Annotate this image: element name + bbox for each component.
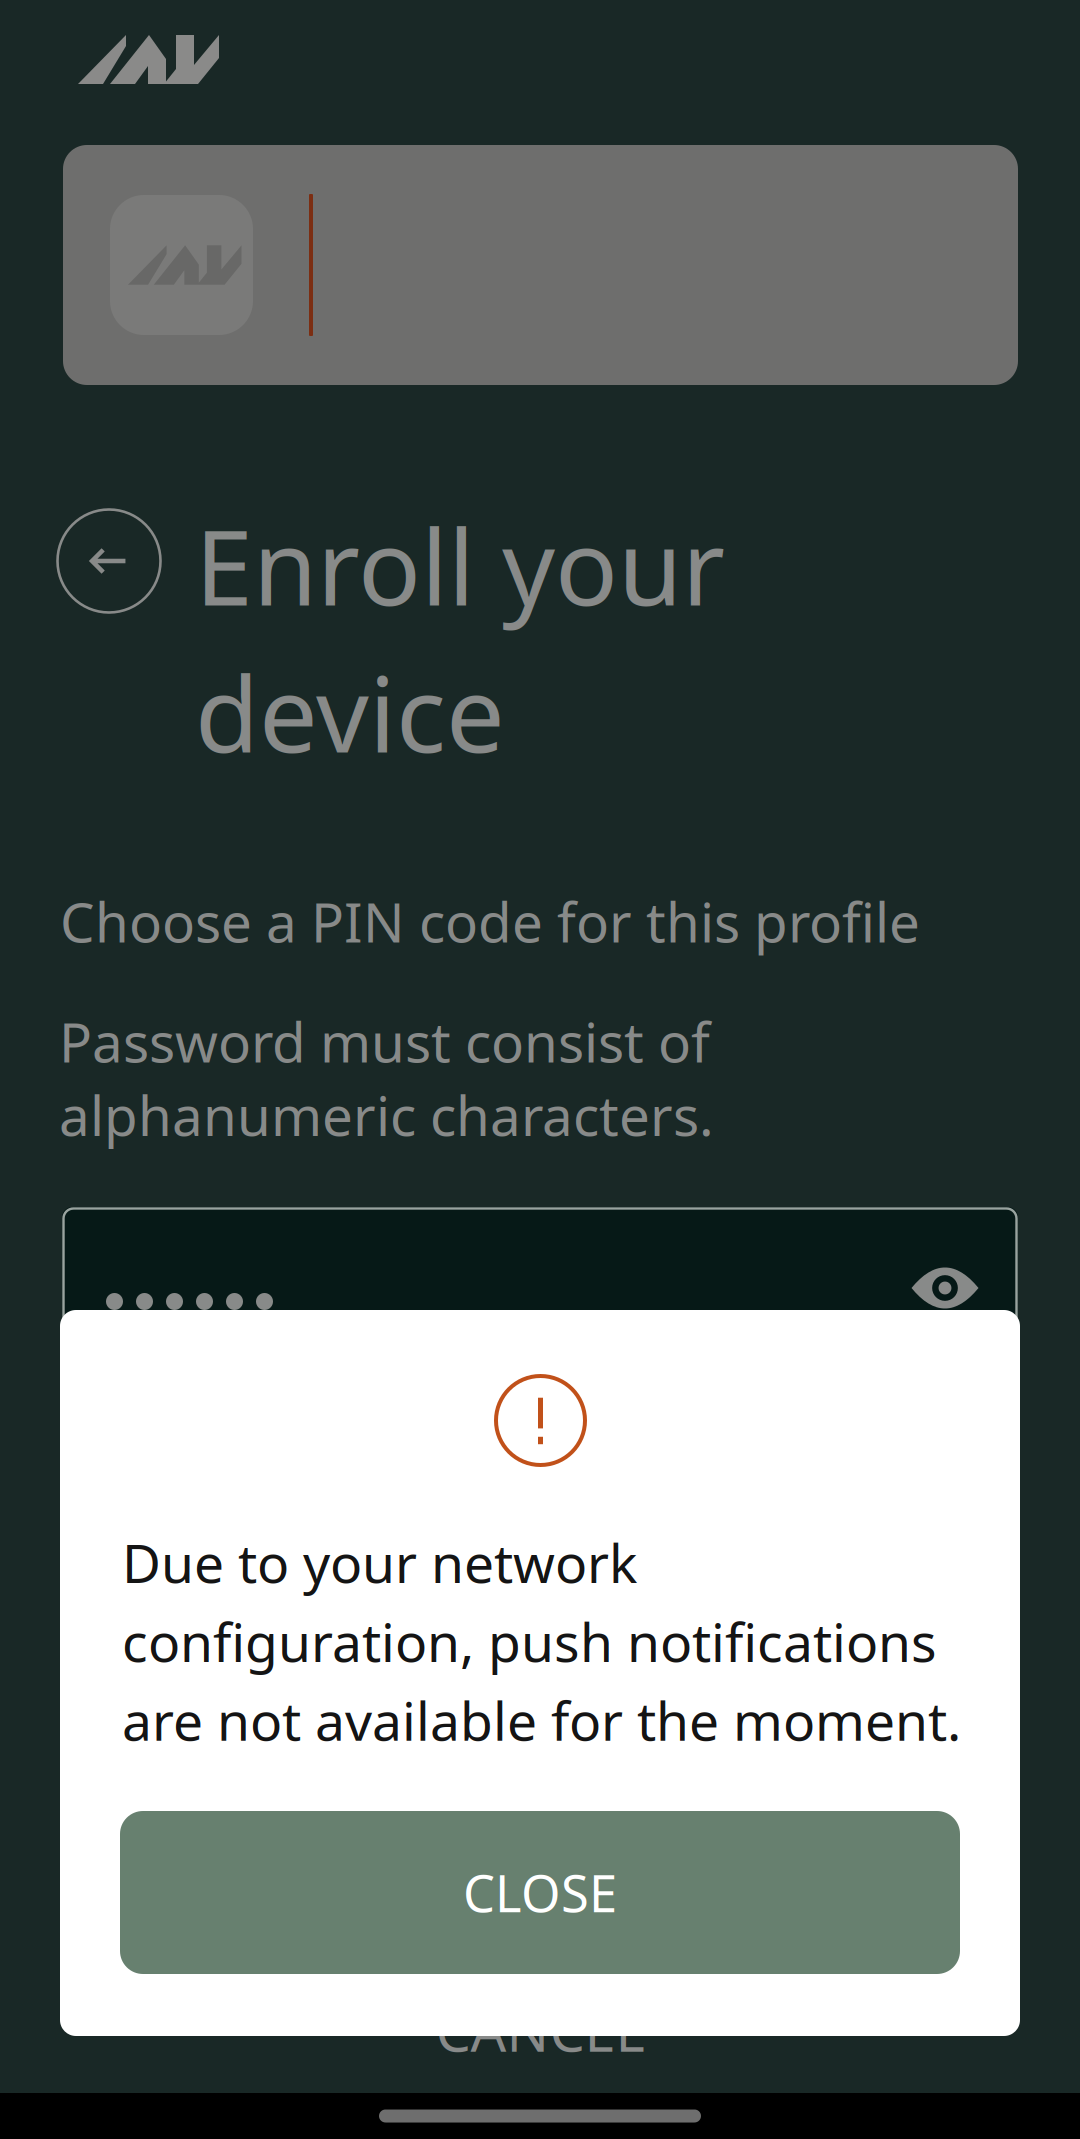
staticText: Enroll your device <box>195 496 725 781</box>
button[interactable]: CANCEL <box>0 1997 1080 2063</box>
button[interactable]: Back <box>56 508 162 614</box>
button[interactable]: CLOSE <box>120 1811 960 1974</box>
staticText: Choose a PIN code for this profile <box>60 885 920 958</box>
staticText: Password must consist of alphanumeric ch… <box>59 1005 714 1151</box>
staticText: Due to your network configuration, push … <box>122 1527 961 1755</box>
staticText: CANCEL <box>435 1993 644 2067</box>
staticText: CLOSE <box>463 1859 617 1926</box>
button[interactable]: Show password <box>893 1236 997 1340</box>
